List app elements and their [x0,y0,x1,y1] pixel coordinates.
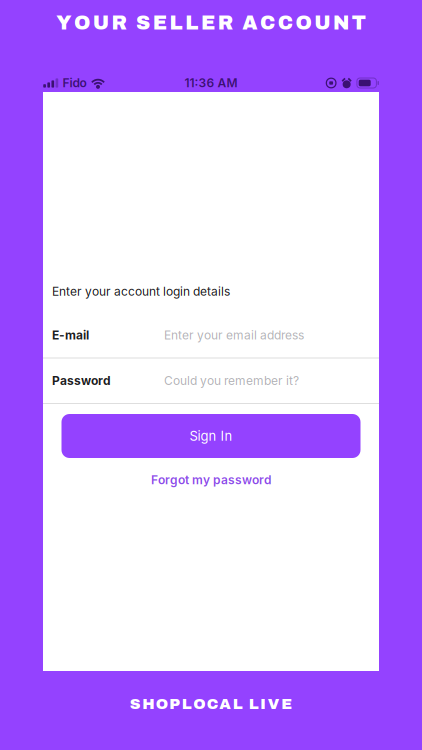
staticText: SHOPLOCAL LIVE [130,696,292,712]
staticText: E-mail [52,328,89,342]
staticText: Forgot my password [151,473,271,487]
staticText: Enter your email address [164,328,304,342]
button[interactable]: Forgot my password [61,469,360,491]
staticText: Sign In [189,428,232,444]
staticText: 11:36 AM [184,76,237,90]
staticText: Password [52,373,111,388]
staticText: Enter your account login details [52,284,230,299]
staticText: Could you remember it? [164,373,299,388]
staticText: Fido [62,76,86,90]
staticText: YOUR SELLER ACCOUNT [56,12,366,34]
button[interactable]: Password [43,358,379,404]
button[interactable]: E-mail [43,313,379,358]
button[interactable]: Sign In [61,414,360,458]
